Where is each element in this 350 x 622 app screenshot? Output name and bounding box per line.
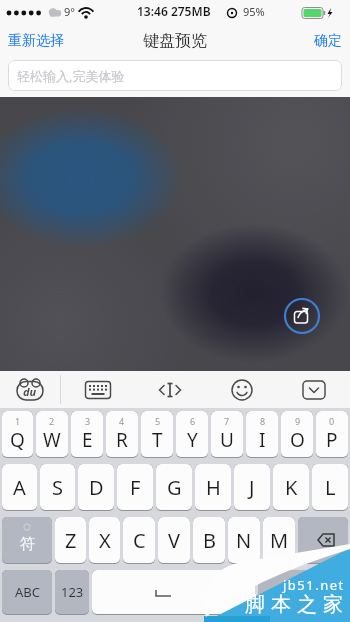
staticText: F	[130, 474, 141, 501]
staticText: 7	[224, 415, 230, 427]
staticText: Z	[65, 527, 77, 554]
button[interactable]: F	[117, 464, 153, 511]
staticText: K	[285, 474, 298, 501]
staticText: S	[52, 474, 63, 501]
button[interactable]: ABC	[2, 570, 52, 615]
button[interactable]: 轻松输入,完美体验	[8, 60, 342, 91]
staticText: Y	[187, 427, 198, 453]
button[interactable]: H	[195, 464, 231, 511]
staticText: V	[168, 527, 180, 554]
button[interactable]: 重新选择	[4, 28, 68, 54]
button[interactable]: 9	[281, 411, 313, 458]
staticText: 确定	[314, 32, 342, 50]
button[interactable]	[282, 296, 322, 336]
staticText: 9	[295, 415, 301, 427]
button[interactable]: 6	[176, 411, 208, 458]
button[interactable]: 5	[141, 411, 173, 458]
staticText: N	[236, 527, 252, 554]
button[interactable]: N	[228, 517, 260, 564]
staticText: I	[259, 427, 266, 453]
button[interactable]: 符	[2, 517, 52, 564]
staticText: A	[13, 474, 26, 501]
staticText: U	[220, 427, 234, 453]
staticText: D	[89, 474, 104, 501]
staticText: L	[325, 474, 336, 501]
staticText: Q	[10, 427, 25, 453]
staticText: 4	[119, 415, 125, 427]
button[interactable]: D	[78, 464, 114, 511]
staticText: H	[206, 474, 221, 501]
button[interactable]: L	[312, 464, 348, 511]
button[interactable]: 3	[71, 411, 103, 458]
staticText: du	[23, 384, 37, 399]
staticText: 键盘预览	[143, 31, 207, 51]
button[interactable]: X	[89, 517, 120, 564]
staticText: 3	[85, 415, 91, 427]
staticText: 13:46 275MB	[137, 3, 211, 19]
button[interactable]: C	[123, 517, 155, 564]
button[interactable]: M	[263, 517, 295, 564]
button[interactable]: 确定	[310, 28, 346, 54]
staticText: M	[270, 527, 289, 554]
button[interactable]: du	[0, 371, 60, 408]
button[interactable]: 7	[211, 411, 243, 458]
staticText: X	[99, 527, 111, 554]
staticText: 轻松输入,完美体验	[17, 67, 125, 85]
staticText: jb51.net	[283, 576, 345, 594]
button[interactable]	[61, 371, 134, 408]
staticText: P	[326, 427, 338, 453]
button[interactable]	[92, 570, 255, 615]
button[interactable]: S	[40, 464, 75, 511]
staticText: 9°	[64, 4, 75, 19]
staticText: C	[133, 527, 146, 554]
staticText: 符	[20, 535, 35, 554]
staticText: 0	[329, 415, 335, 427]
staticText: J	[249, 474, 255, 501]
button[interactable]: G	[156, 464, 192, 511]
button[interactable]: 0	[316, 411, 348, 458]
staticText: B	[203, 527, 216, 554]
button[interactable]: 2	[36, 411, 68, 458]
button[interactable]	[298, 517, 348, 564]
staticText: 8	[260, 415, 266, 427]
button[interactable]: A	[2, 464, 37, 511]
staticText: 1	[15, 415, 21, 427]
button[interactable]: 123	[55, 570, 89, 615]
staticText: O	[290, 427, 305, 453]
staticText: 95%	[243, 4, 265, 19]
staticText: R	[116, 427, 128, 453]
button[interactable]	[258, 570, 348, 615]
staticText: 6	[190, 415, 196, 427]
staticText: 重新选择	[8, 32, 64, 50]
button[interactable]	[278, 371, 350, 408]
staticText: E	[82, 427, 93, 453]
staticText: 5	[155, 415, 161, 427]
button[interactable]: Z	[55, 517, 86, 564]
staticText: 脚本之家	[242, 592, 346, 617]
staticText: G	[167, 474, 182, 501]
button[interactable]	[206, 371, 278, 408]
button[interactable]: V	[158, 517, 190, 564]
staticText: 123	[61, 583, 84, 601]
staticText: ABC	[15, 583, 40, 601]
staticText: 2	[49, 415, 55, 427]
button[interactable]: J	[234, 464, 270, 511]
button[interactable]: K	[273, 464, 309, 511]
staticText: W	[43, 427, 61, 453]
button[interactable]	[134, 371, 206, 408]
button[interactable]: 8	[246, 411, 278, 458]
button[interactable]: B	[193, 517, 225, 564]
button[interactable]: 4	[106, 411, 138, 458]
button[interactable]: 1	[2, 411, 33, 458]
staticText: T	[152, 427, 163, 453]
